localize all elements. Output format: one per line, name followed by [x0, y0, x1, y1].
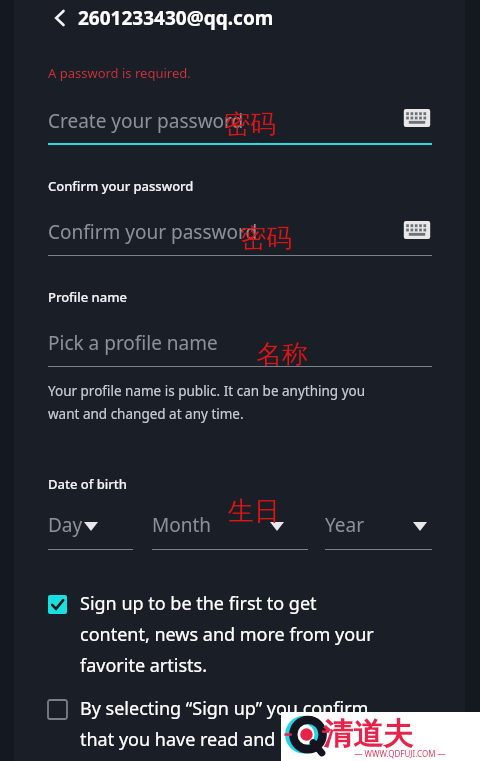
staticText: A password is required.: [48, 64, 191, 82]
staticText: Month: [152, 512, 212, 538]
staticText: favorite artists.: [80, 653, 207, 678]
staticText: Create your password: [48, 108, 244, 134]
button[interactable]: Back: [48, 2, 278, 34]
staticText: Confirm your password: [48, 177, 194, 195]
button[interactable]: Year: [325, 505, 432, 545]
button[interactable]: Create your password: [48, 98, 432, 144]
staticText: want and changed at any time.: [48, 405, 244, 423]
staticText: Profile name: [48, 288, 127, 306]
staticText: 2601233430@qq.com: [78, 5, 274, 31]
staticText: 名称: [256, 338, 308, 371]
staticText: Your profile name is public. It can be a…: [48, 382, 366, 400]
button[interactable]: Show keyboard: [402, 218, 432, 242]
staticText: Sign up to be the first to get: [80, 591, 317, 616]
staticText: By selecting “Sign up” you confirm: [80, 696, 369, 721]
staticText: Pick a profile name: [48, 330, 218, 356]
staticText: 生日: [228, 495, 280, 528]
staticText: 密码: [240, 222, 292, 255]
button[interactable]: Month: [152, 505, 308, 545]
button[interactable]: Confirm your password: [48, 210, 432, 254]
staticText: — WWW.QDFUJI.COM —: [325, 748, 475, 759]
staticText: content, news and more from your: [80, 622, 374, 647]
staticText: Day: [48, 512, 83, 538]
staticText: Year: [325, 512, 365, 538]
staticText: that you have read and: [80, 727, 276, 752]
button[interactable]: Day: [48, 505, 133, 545]
button[interactable]: By selecting “Sign up” you confirm: [44, 694, 444, 752]
staticText: 密码: [224, 108, 276, 141]
staticText: Date of birth: [48, 475, 127, 493]
other: Back: [52, 7, 68, 29]
button[interactable]: Show keyboard: [402, 106, 432, 130]
button[interactable]: Pick a profile name: [48, 321, 432, 365]
staticText: 清道夫: [323, 715, 413, 753]
button[interactable]: Sign up to be the first to get: [44, 589, 444, 678]
staticText: Confirm your password: [48, 219, 258, 245]
